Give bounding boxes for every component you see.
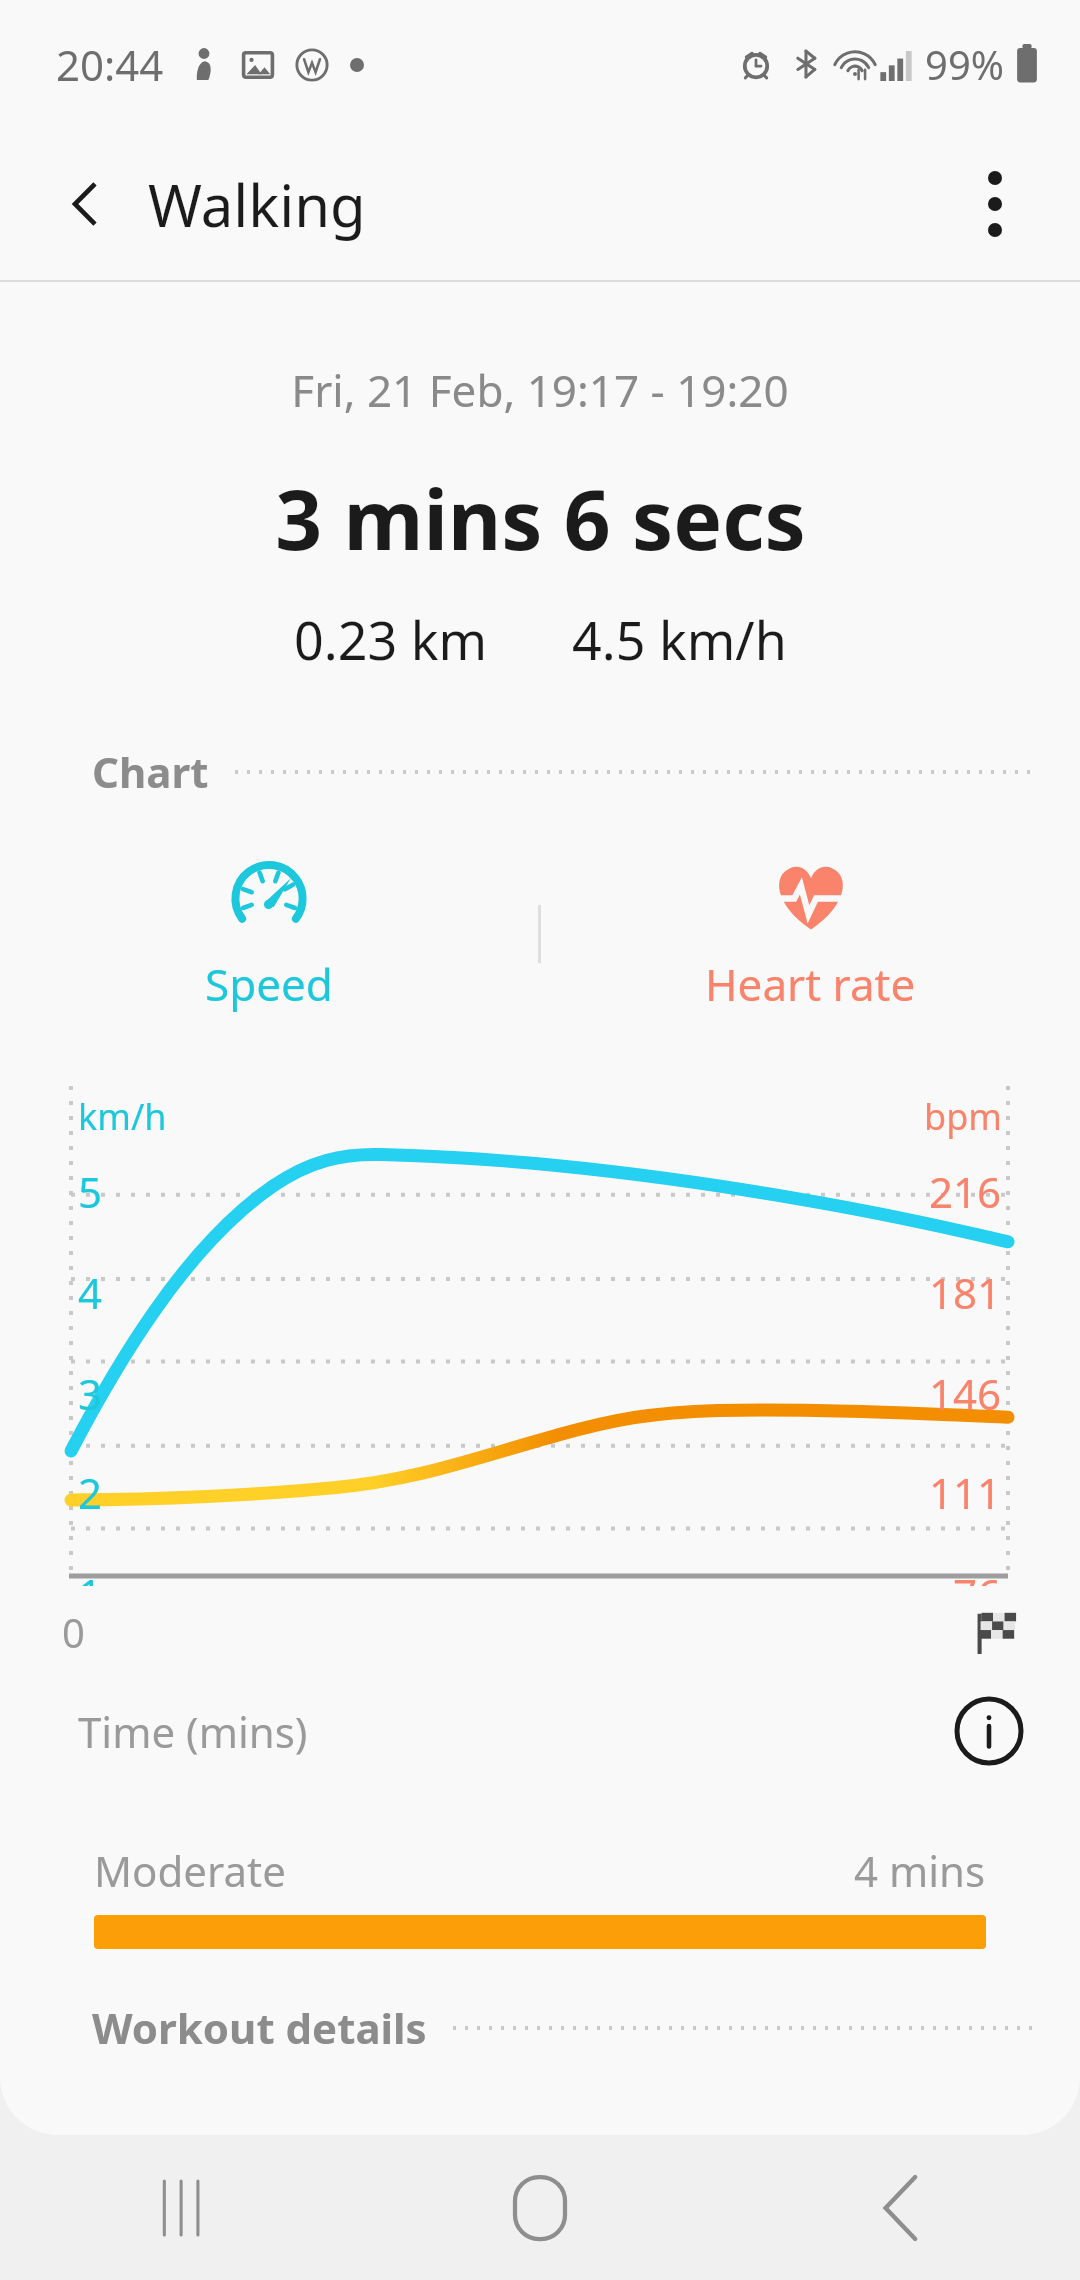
staticText: Fri, 21 Feb, 19:17 - 19:20	[291, 360, 789, 420]
staticText: Chart	[92, 743, 209, 800]
staticText: 1	[78, 1565, 103, 1586]
staticText: bpm	[924, 1092, 1002, 1141]
button[interactable]: Information	[946, 1688, 1032, 1774]
staticText: 3	[78, 1365, 103, 1422]
staticText: 0.23 km	[294, 604, 488, 675]
staticText: 5	[78, 1163, 103, 1220]
button[interactable]: Speed	[145, 844, 393, 1024]
staticText: Time (mins)	[78, 1703, 308, 1760]
staticText: 20:44	[56, 36, 164, 93]
staticText: Moderate	[94, 1842, 286, 1899]
staticText: 3 mins 6 secs	[275, 462, 806, 574]
button[interactable]: Back	[34, 152, 138, 256]
staticText: Speed	[205, 954, 333, 1014]
button[interactable]: Moderate intensity 4 mins	[94, 1915, 986, 1949]
button[interactable]: Recent apps	[0, 2135, 360, 2280]
staticText: 76	[953, 1565, 1002, 1586]
button[interactable]: Back	[720, 2135, 1080, 2280]
button[interactable]: Heart rate	[665, 844, 956, 1024]
button[interactable]: Home	[360, 2135, 720, 2280]
staticText: 2	[78, 1464, 103, 1521]
staticText: 4	[78, 1264, 103, 1321]
other: Finish	[970, 1608, 1018, 1656]
staticText: Walking	[148, 165, 366, 244]
staticText: Heart rate	[705, 954, 916, 1014]
staticText: 4 mins	[854, 1842, 986, 1899]
staticText: 4.5 km/h	[572, 604, 787, 675]
staticText: Workout details	[92, 1999, 427, 2056]
staticText: 146	[929, 1365, 1002, 1422]
staticText: 99%	[925, 37, 1004, 91]
staticText: 216	[929, 1163, 1002, 1220]
staticText: 0	[62, 1605, 85, 1659]
staticText: 181	[929, 1264, 1002, 1321]
staticText: km/h	[78, 1092, 167, 1141]
button[interactable]: More options	[940, 149, 1050, 259]
staticText: 111	[929, 1464, 1002, 1521]
